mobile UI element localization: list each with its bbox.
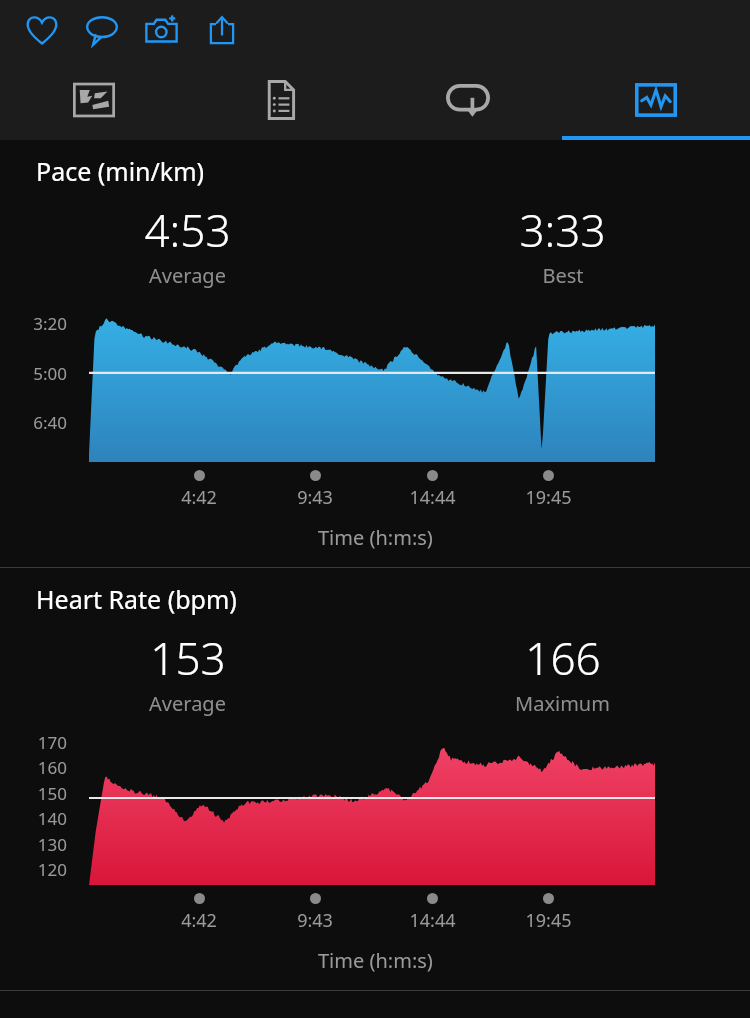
button[interactable]: Details — [187, 60, 374, 140]
staticText: 3:20 — [0, 312, 67, 335]
staticText: 5:00 — [0, 362, 67, 385]
button[interactable]: Like — [18, 6, 66, 54]
staticText: 6:40 — [0, 411, 67, 434]
staticText: Maximum — [515, 690, 610, 717]
button[interactable]: Comment — [78, 6, 126, 54]
staticText: 4:42 — [181, 908, 217, 933]
button[interactable]: Share — [198, 6, 246, 54]
staticText: 140 — [0, 807, 67, 830]
staticText: 130 — [0, 833, 67, 856]
staticText: 19:45 — [525, 485, 572, 510]
staticText: Average — [149, 262, 226, 289]
staticText: 170 — [0, 731, 67, 754]
staticText: 3:33 — [519, 200, 606, 260]
staticText: Heart Rate (bpm) — [36, 582, 237, 616]
staticText: 4:42 — [181, 485, 217, 510]
button[interactable]: Charts — [562, 60, 750, 140]
staticText: 14:44 — [409, 485, 456, 510]
staticText: Pace (min/km) — [36, 154, 205, 188]
staticText: 14:44 — [409, 908, 456, 933]
staticText: Average — [149, 690, 226, 717]
staticText: 4:53 — [144, 200, 231, 260]
staticText: 9:43 — [297, 908, 333, 933]
button[interactable]: Add photo — [138, 6, 186, 54]
staticText: 120 — [0, 858, 67, 881]
staticText: 9:43 — [297, 485, 333, 510]
staticText: 153 — [150, 628, 226, 688]
staticText: 150 — [0, 782, 67, 805]
staticText: 19:45 — [525, 908, 572, 933]
button[interactable]: Laps — [374, 60, 562, 140]
staticText: Time (h:m:s) — [318, 524, 433, 551]
staticText: Best — [542, 262, 584, 289]
staticText: 166 — [525, 628, 601, 688]
button[interactable]: Map — [0, 60, 187, 140]
staticText: Time (h:m:s) — [318, 947, 433, 974]
staticText: 160 — [0, 756, 67, 779]
